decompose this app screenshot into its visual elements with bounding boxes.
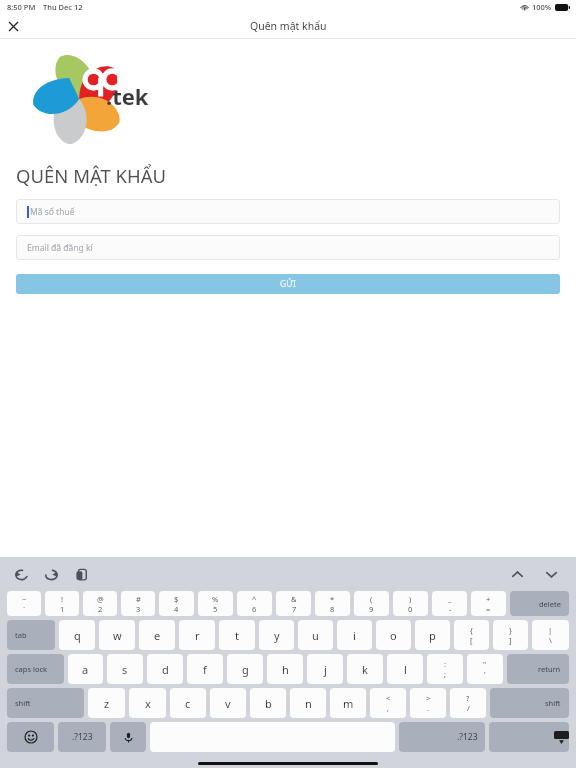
button[interactable]: >	[410, 688, 446, 718]
button[interactable]: #	[121, 591, 155, 616]
button[interactable]: +	[471, 591, 506, 616]
button[interactable]: Redo	[42, 565, 60, 583]
staticText: l	[404, 662, 407, 677]
button[interactable]: j	[307, 654, 343, 684]
button[interactable]: )	[393, 591, 428, 616]
button[interactable]: ^	[237, 591, 272, 616]
button[interactable]: *	[315, 591, 350, 616]
button[interactable]: |	[532, 620, 569, 650]
staticText: c	[185, 696, 191, 711]
button[interactable]: k	[347, 654, 383, 684]
staticText: z	[104, 696, 110, 711]
button[interactable]: }	[493, 620, 528, 650]
button[interactable]: Email đã đăng kí	[16, 235, 560, 260]
button[interactable]: @	[83, 591, 117, 616]
button[interactable]: i	[337, 620, 372, 650]
button[interactable]: d	[147, 654, 183, 684]
staticText: h	[282, 662, 289, 677]
button[interactable]: z	[88, 688, 125, 718]
button[interactable]: {	[454, 620, 489, 650]
staticText: #	[136, 594, 141, 604]
staticText: 3	[136, 604, 141, 614]
button[interactable]: !	[45, 591, 79, 616]
staticText: Mã số thuế	[30, 206, 75, 218]
staticText: Quên mật khẩu	[250, 19, 327, 33]
staticText: shift	[15, 698, 31, 708]
button[interactable]: "	[467, 654, 503, 684]
button[interactable]: b	[250, 688, 286, 718]
button[interactable]: .?123	[58, 722, 106, 752]
staticText: ~	[22, 594, 27, 604]
button[interactable]: r	[179, 620, 215, 650]
staticText: ?	[466, 693, 470, 703]
staticText: k	[362, 662, 368, 677]
staticText: w	[113, 628, 122, 643]
button[interactable]: caps lock	[7, 654, 64, 684]
button[interactable]: f	[187, 654, 223, 684]
button[interactable]: Undo	[12, 565, 30, 583]
button[interactable]	[110, 722, 146, 752]
button[interactable]: v	[210, 688, 246, 718]
button[interactable]: GỬI	[16, 274, 560, 294]
staticText: r	[195, 628, 200, 643]
button[interactable]: (	[354, 591, 389, 616]
button[interactable]: Paste	[72, 565, 90, 583]
button[interactable]: y	[259, 620, 294, 650]
button[interactable]: ?	[450, 688, 486, 718]
button[interactable]: u	[298, 620, 333, 650]
button[interactable]: Mã số thuế	[16, 199, 560, 224]
button[interactable]	[7, 722, 54, 752]
button[interactable]: <	[370, 688, 406, 718]
button[interactable]: _	[432, 591, 467, 616]
button[interactable]: x	[129, 688, 166, 718]
button[interactable]: m	[330, 688, 366, 718]
button[interactable]: a	[68, 654, 103, 684]
button[interactable]: n	[290, 688, 326, 718]
staticText: _	[448, 594, 452, 604]
button[interactable]: .?123	[399, 722, 485, 752]
staticText: 2	[98, 604, 103, 614]
staticText: >	[426, 693, 431, 703]
button[interactable]: s	[107, 654, 143, 684]
button[interactable]: w	[99, 620, 135, 650]
button[interactable]: :	[427, 654, 463, 684]
staticText: u	[312, 628, 319, 643]
button[interactable]: l	[387, 654, 423, 684]
button[interactable]: o	[376, 620, 411, 650]
staticText: ^	[252, 594, 257, 604]
staticText: QUÊN MẬT KHẨU	[16, 163, 167, 188]
staticText: n	[305, 696, 312, 711]
button[interactable]: p	[415, 620, 450, 650]
button[interactable]: c	[170, 688, 206, 718]
button[interactable]: e	[139, 620, 175, 650]
button[interactable]: q	[59, 620, 95, 650]
button[interactable]: &	[276, 591, 311, 616]
staticText: x	[145, 696, 151, 711]
staticText: v	[225, 696, 231, 711]
staticText: .?123	[72, 731, 93, 743]
staticText: o	[390, 628, 397, 643]
button[interactable]: shift	[7, 688, 84, 718]
button[interactable]: return	[507, 654, 569, 684]
staticText: 9	[369, 604, 374, 614]
button[interactable]	[489, 722, 569, 752]
staticText: 0	[408, 604, 413, 614]
button[interactable]: ~	[7, 591, 41, 616]
button[interactable]: Next	[542, 565, 560, 583]
button[interactable]: h	[267, 654, 303, 684]
staticText: d	[162, 662, 169, 677]
button[interactable]: Close	[0, 14, 26, 38]
staticText: 8:50 PM	[7, 2, 36, 12]
staticText: :	[444, 659, 447, 669]
button[interactable]: Previous	[508, 565, 526, 583]
button[interactable]: $	[159, 591, 194, 616]
button[interactable]: g	[227, 654, 263, 684]
button[interactable]: shift	[490, 688, 569, 718]
button[interactable]: delete	[510, 591, 569, 616]
button[interactable]: tab	[7, 620, 55, 650]
button[interactable]: %	[198, 591, 233, 616]
button[interactable]: t	[219, 620, 255, 650]
staticText: \	[549, 635, 552, 645]
staticText: GỬI	[280, 278, 296, 290]
